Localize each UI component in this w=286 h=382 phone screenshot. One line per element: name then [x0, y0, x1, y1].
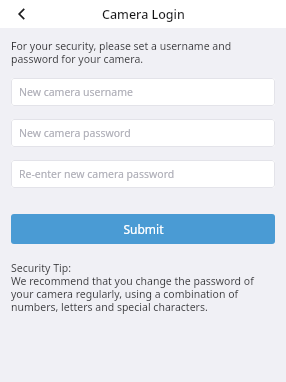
staticText: Submit [123, 221, 164, 237]
staticText: New camera password [19, 126, 131, 140]
staticText: Re-enter new camera password [19, 167, 175, 181]
button[interactable]: Back [8, 0, 36, 28]
staticText: For your security, please set a username… [11, 39, 232, 66]
staticText: Security Tip: We recommend that you chan… [11, 261, 254, 314]
button[interactable]: New camera username [11, 78, 275, 106]
staticText: Camera Login [102, 6, 185, 23]
button[interactable]: Submit [11, 214, 275, 244]
button[interactable]: New camera password [11, 119, 275, 147]
staticText: New camera username [19, 85, 133, 99]
button[interactable]: Re-enter new camera password [11, 160, 275, 188]
